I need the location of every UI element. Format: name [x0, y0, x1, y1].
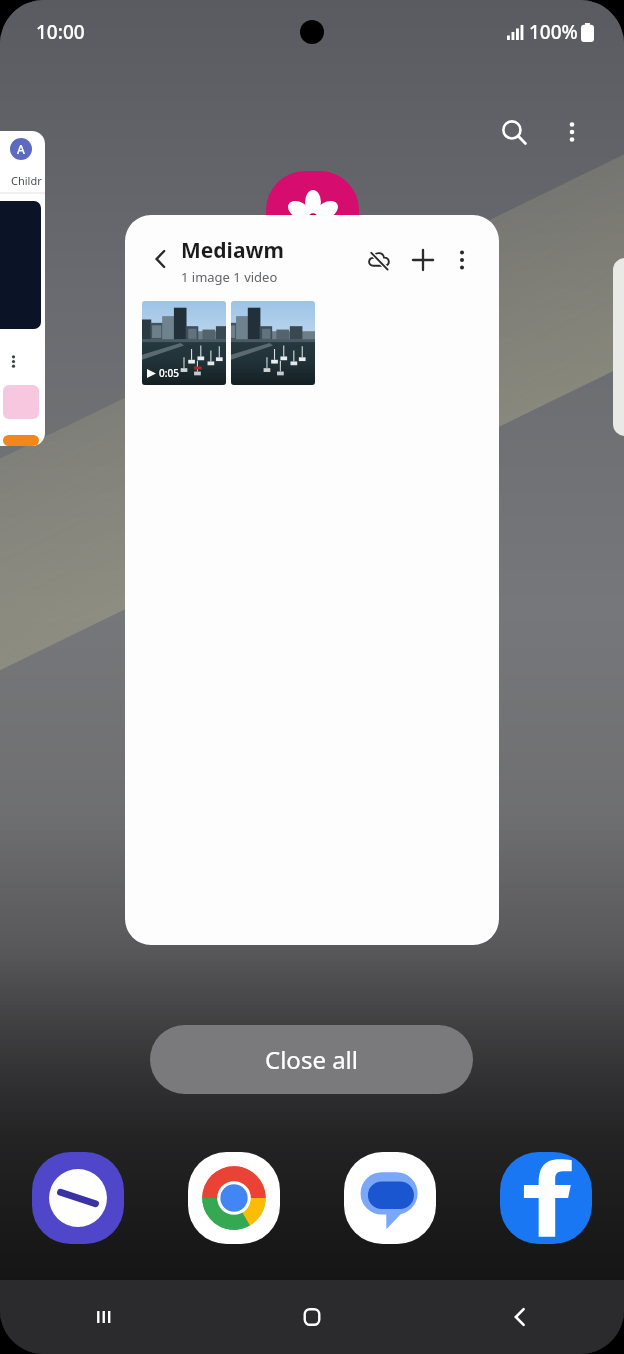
staticText: Close all: [265, 1043, 358, 1076]
staticText: 1 image 1 video: [181, 268, 278, 286]
staticText: A: [17, 141, 25, 157]
button[interactable]: Back: [125, 215, 499, 945]
button[interactable]: [231, 301, 315, 385]
button[interactable]: Messages: [344, 1152, 436, 1244]
button[interactable]: Recents: [0, 1280, 208, 1354]
button[interactable]: Add: [405, 242, 441, 278]
button[interactable]: Chrome: [188, 1152, 280, 1244]
button[interactable]: 0:05: [142, 301, 226, 385]
staticText: Childr: [11, 173, 42, 188]
button[interactable]: Home: [208, 1280, 416, 1354]
button[interactable]: Cloud sync off: [361, 242, 397, 278]
staticText: 100%: [529, 19, 578, 45]
button[interactable]: Close all: [150, 1025, 473, 1094]
staticText: 10:00: [36, 19, 85, 45]
button[interactable]: Back: [416, 1280, 624, 1354]
button[interactable]: Gallery: [266, 171, 359, 264]
button[interactable]: [613, 258, 624, 436]
staticText: 0:05: [159, 366, 179, 380]
button[interactable]: Facebook: [500, 1152, 592, 1244]
button[interactable]: More options: [445, 243, 479, 277]
button[interactable]: A: [0, 131, 45, 446]
staticText: Mediawm: [181, 236, 284, 265]
button[interactable]: Back: [143, 241, 179, 277]
button[interactable]: Search: [492, 110, 536, 154]
button[interactable]: More options: [550, 110, 594, 154]
button[interactable]: Samsung Internet: [32, 1152, 124, 1244]
